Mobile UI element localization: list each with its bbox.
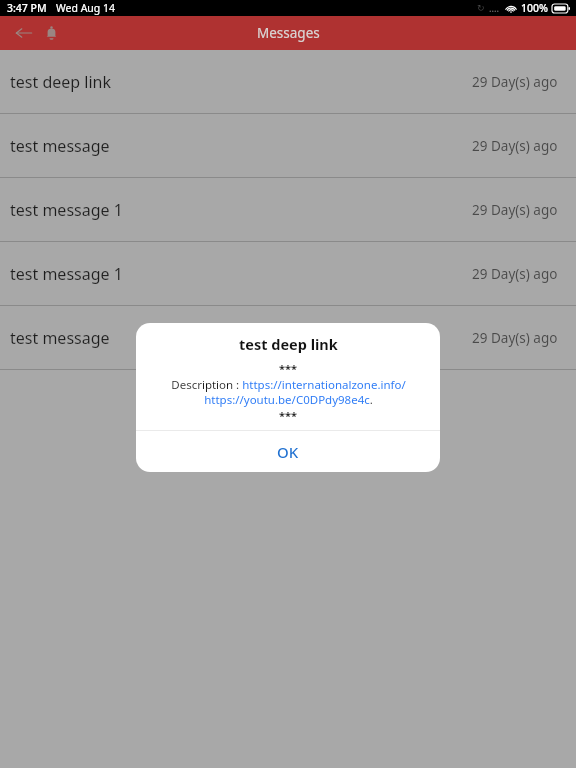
staticText: ***: [279, 361, 297, 376]
staticText: test message: [10, 135, 110, 157]
button[interactable]: test message 1: [0, 242, 576, 306]
staticText: OK: [277, 442, 299, 462]
staticText: ↻: [477, 3, 485, 13]
staticText: Description : https://internationalzone.…: [171, 377, 406, 407]
button[interactable]: Notifications: [38, 20, 64, 46]
button[interactable]: Back: [10, 20, 36, 46]
staticText: Wed Aug 14: [56, 1, 116, 15]
staticText: ....: [489, 2, 500, 14]
staticText: 29 Day(s) ago: [472, 73, 558, 91]
staticText: test message 1: [10, 263, 123, 285]
staticText: Messages: [257, 24, 320, 42]
button[interactable]: OK: [136, 431, 440, 472]
staticText: test deep link: [10, 71, 111, 93]
staticText: 29 Day(s) ago: [472, 137, 558, 155]
staticText: test deep link: [239, 334, 338, 354]
staticText: 29 Day(s) ago: [472, 265, 558, 283]
button[interactable]: test deep link: [0, 50, 576, 114]
staticText: 3:47 PM: [7, 1, 47, 15]
staticText: test message 1: [10, 199, 123, 221]
staticText: ***: [279, 408, 297, 423]
button[interactable]: test message 1: [0, 178, 576, 242]
staticText: 29 Day(s) ago: [472, 329, 558, 347]
staticText: test message: [10, 327, 110, 349]
button[interactable]: test message: [0, 306, 576, 370]
button[interactable]: test message: [0, 114, 576, 178]
staticText: 100%: [521, 1, 548, 15]
staticText: 29 Day(s) ago: [472, 201, 558, 219]
